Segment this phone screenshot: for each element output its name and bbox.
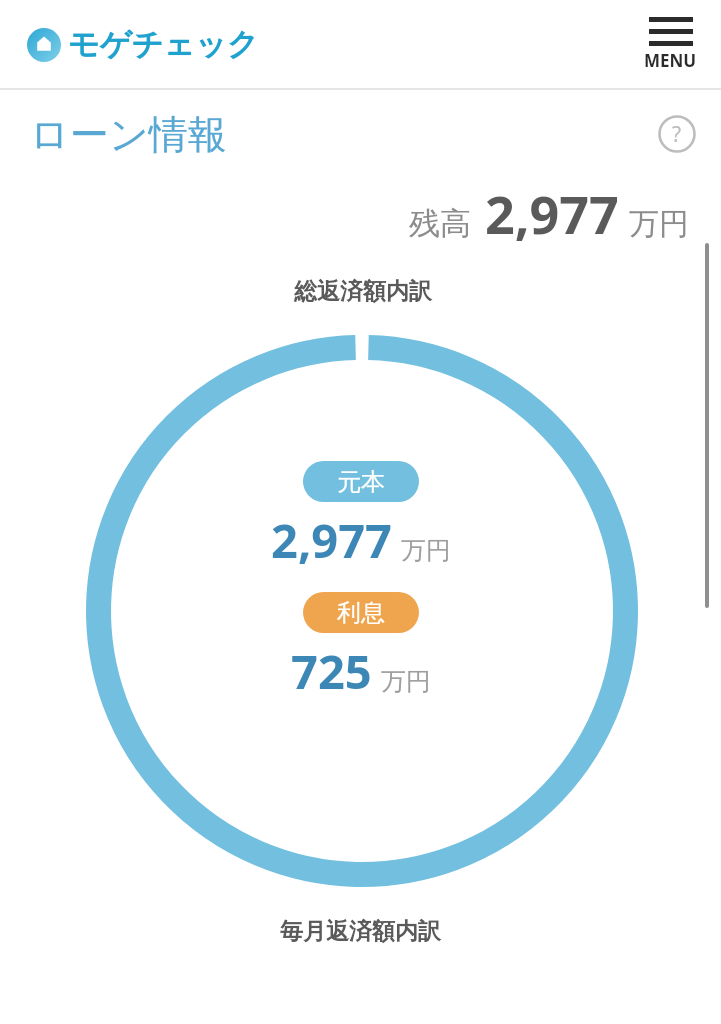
staticText: 万円 [629, 205, 689, 243]
staticText: MENU [644, 49, 697, 72]
staticText: 万円 [381, 666, 431, 697]
staticText: 元本 [337, 467, 385, 497]
button[interactable]: 利息 [303, 592, 419, 633]
button[interactable]: 元本 [303, 461, 419, 502]
staticText: 総返済額内訳 [294, 277, 432, 306]
staticText: 2,977 [485, 178, 619, 249]
button[interactable]: Help [657, 114, 697, 154]
staticText: 残高 [409, 204, 471, 243]
staticText: 2,977 [271, 508, 392, 572]
staticText: ローン情報 [30, 110, 227, 159]
staticText: 利息 [337, 598, 385, 628]
button[interactable]: Menu [644, 17, 697, 72]
staticText: ? [672, 120, 682, 149]
staticText: 725 [291, 639, 372, 703]
button[interactable]: モゲチェック [27, 25, 259, 64]
staticText: 万円 [401, 535, 451, 566]
staticText: モゲチェック [68, 25, 259, 64]
staticText: 毎月返済額内訳 [280, 917, 441, 946]
